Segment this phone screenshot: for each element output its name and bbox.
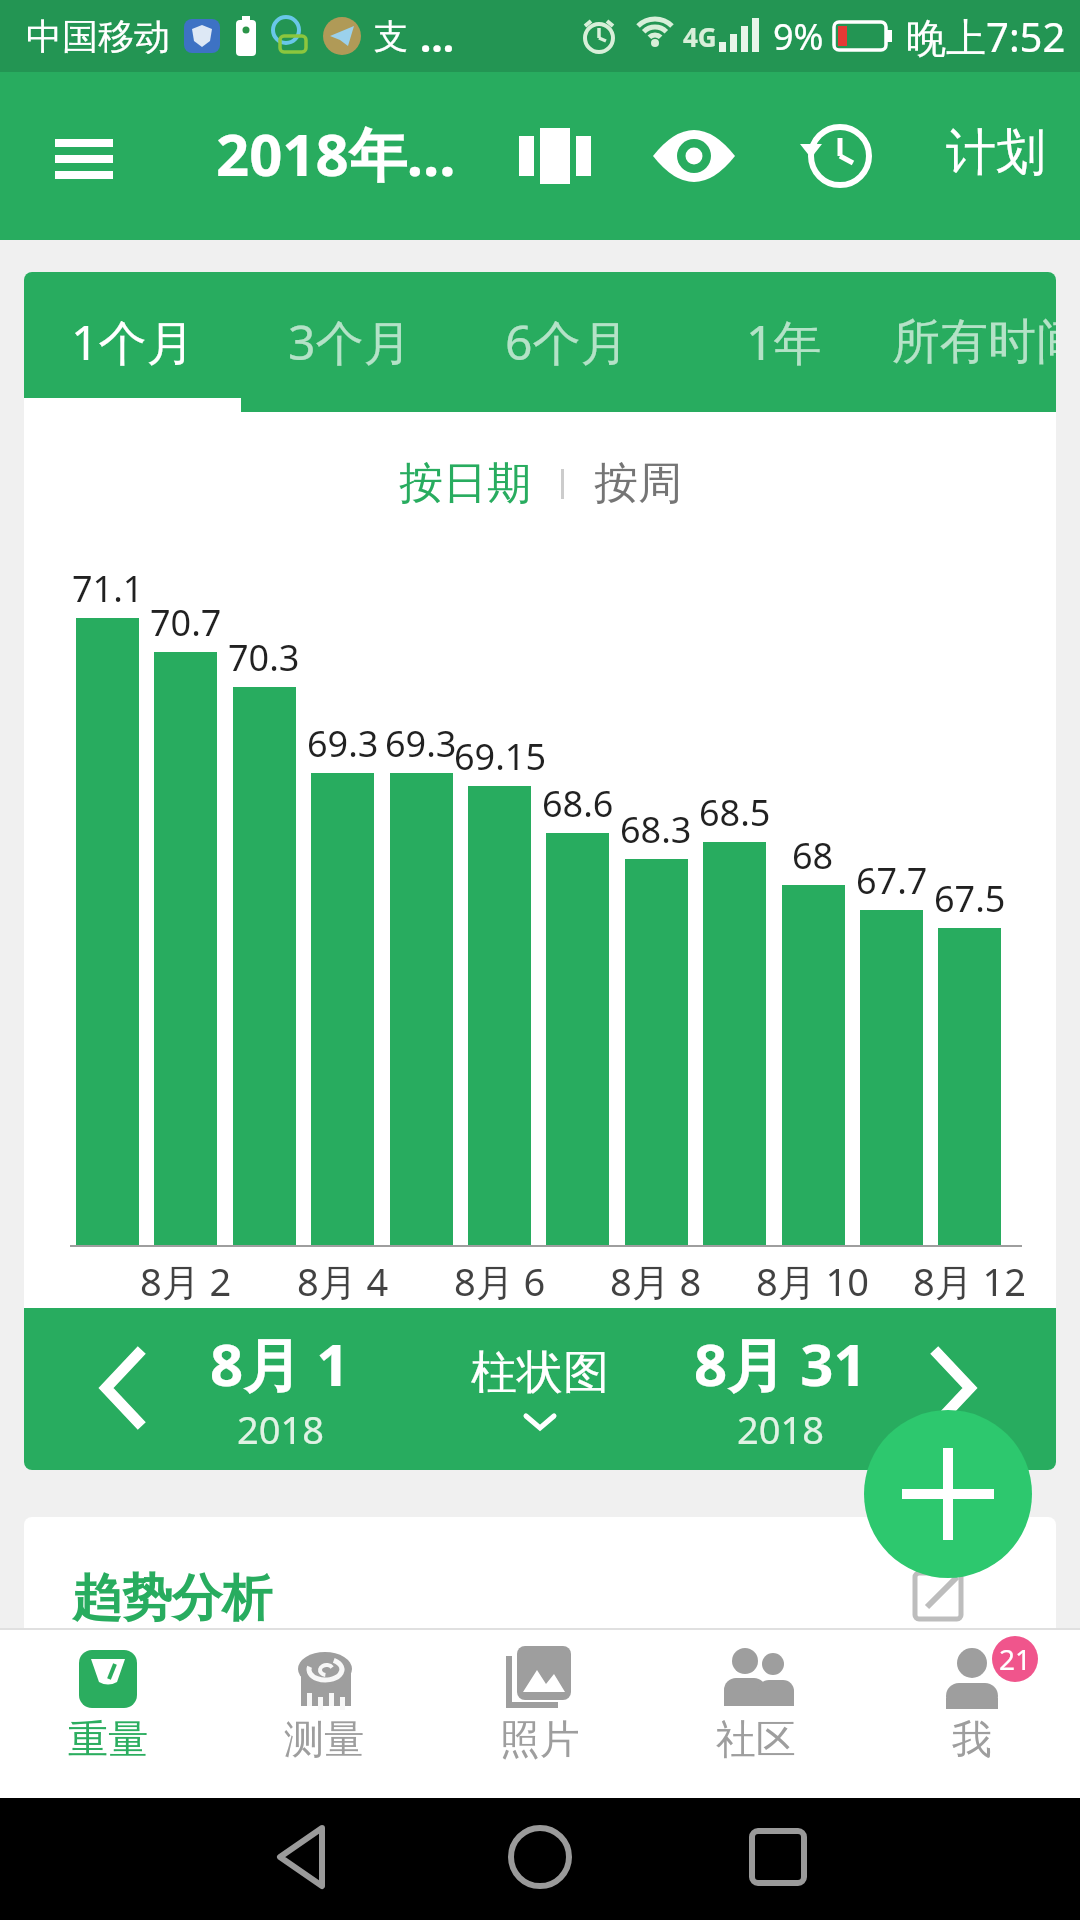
button[interactable]: 8月 31 xyxy=(680,1324,880,1460)
staticText: 8月 31 xyxy=(694,1324,867,1403)
button[interactable] xyxy=(72,1338,172,1438)
staticText: 8月 1 xyxy=(210,1324,350,1403)
staticText: 中国移动 xyxy=(26,14,170,59)
staticText: 8月 2 xyxy=(140,1255,232,1303)
staticText: 晚上7:52 xyxy=(906,9,1066,64)
staticText: … xyxy=(420,9,455,63)
staticText: 支 xyxy=(374,15,408,58)
button[interactable]: 所有时间 xyxy=(892,272,1056,412)
button[interactable]: 测量 xyxy=(216,1630,432,1798)
button[interactable]: 柱状图 xyxy=(440,1344,640,1464)
staticText: 6个月 xyxy=(505,309,629,375)
button[interactable]: 按日期 xyxy=(399,456,531,511)
staticText: 67.7 xyxy=(856,856,928,904)
button[interactable]: 3个月 xyxy=(241,272,458,412)
staticText: 70.3 xyxy=(228,633,300,681)
staticText: 所有时间 xyxy=(892,312,1056,372)
staticText: 69.15 xyxy=(454,732,547,780)
button[interactable]: 1年 xyxy=(675,272,892,412)
button[interactable]: 8月 1 xyxy=(180,1324,380,1460)
staticText: 69.3 xyxy=(385,719,457,767)
button[interactable]: 重量 xyxy=(0,1630,216,1798)
staticText: 69.3 xyxy=(307,719,379,767)
staticText: 柱状图 xyxy=(471,1344,609,1402)
staticText: 68 xyxy=(792,831,834,879)
button[interactable] xyxy=(790,106,890,206)
staticText: 2018年... xyxy=(216,114,456,193)
staticText: 68.3 xyxy=(620,805,692,853)
staticText: 21 xyxy=(999,1640,1032,1678)
staticText: 测量 xyxy=(284,1714,364,1764)
staticText: 3个月 xyxy=(288,309,412,375)
button[interactable] xyxy=(644,106,744,206)
button[interactable]: 社区 xyxy=(648,1630,864,1798)
button[interactable]: 21 xyxy=(864,1630,1080,1798)
staticText: 趋势分析 xyxy=(72,1567,272,1628)
button[interactable]: 按周 xyxy=(594,456,682,511)
staticText: 67.5 xyxy=(934,874,1006,922)
staticText: 1年 xyxy=(746,309,822,375)
staticText: 重量 xyxy=(68,1714,148,1764)
staticText: 68.5 xyxy=(699,788,771,836)
staticText: 9% xyxy=(773,12,824,61)
staticText: 8月 10 xyxy=(756,1255,870,1303)
button[interactable] xyxy=(36,128,132,198)
staticText: 2018 xyxy=(737,1403,824,1455)
staticText: 社区 xyxy=(716,1714,796,1764)
staticText: 2018 xyxy=(237,1403,324,1455)
staticText: 4G xyxy=(683,19,717,54)
staticText: 照片 xyxy=(500,1714,580,1764)
button[interactable] xyxy=(864,1410,1032,1578)
staticText: 71.1 xyxy=(72,564,144,612)
staticText: 8月 4 xyxy=(297,1255,389,1303)
staticText: 70.7 xyxy=(150,598,222,646)
staticText: 68.6 xyxy=(542,779,614,827)
staticText: 8月 12 xyxy=(913,1255,1027,1303)
staticText: 8月 8 xyxy=(610,1255,702,1303)
staticText: 1个月 xyxy=(71,309,195,375)
button[interactable]: 计划 xyxy=(946,121,1046,184)
button[interactable] xyxy=(505,106,605,206)
button[interactable]: 1个月 xyxy=(24,272,241,412)
button[interactable]: 照片 xyxy=(432,1630,648,1798)
staticText: 我 xyxy=(952,1714,992,1764)
button[interactable] xyxy=(904,1338,1004,1438)
button[interactable]: 6个月 xyxy=(458,272,675,412)
staticText: 8月 6 xyxy=(454,1255,546,1303)
